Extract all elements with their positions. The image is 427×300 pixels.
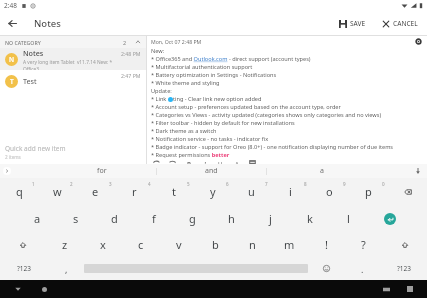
staticText: * White theme and styling — [151, 79, 220, 87]
button[interactable]: p — [349, 178, 388, 205]
staticText: 2:47 PM — [121, 72, 141, 79]
button[interactable]: c — [122, 232, 160, 257]
button[interactable]: Hide keyboard — [412, 165, 424, 177]
button[interactable]: Back — [0, 11, 24, 35]
button[interactable]: Undo — [152, 160, 161, 164]
button[interactable]: Shift — [0, 232, 46, 257]
button[interactable]: ? — [345, 232, 382, 257]
button[interactable]: CANCEL — [377, 15, 423, 32]
button[interactable]: j — [251, 205, 290, 232]
button[interactable]: NO CATEGORY — [0, 36, 146, 48]
button[interactable]: Recents — [403, 282, 417, 296]
staticText: b — [212, 237, 219, 252]
staticText: f — [152, 211, 156, 226]
staticText: s — [73, 211, 79, 226]
button[interactable]: k — [290, 205, 329, 232]
button[interactable]: ?123 — [380, 257, 427, 280]
button[interactable]: for — [47, 166, 156, 176]
staticText: 8 — [304, 181, 307, 187]
button[interactable]: U — [216, 160, 225, 164]
button[interactable]: Insert — [248, 160, 257, 164]
button[interactable]: Shift — [382, 232, 427, 257]
button[interactable]: , — [48, 257, 84, 280]
staticText: * Dark theme as a switch — [151, 127, 217, 135]
button[interactable]: N — [0, 48, 146, 70]
button[interactable]: Keyboard — [379, 282, 393, 296]
staticText: u — [248, 184, 255, 199]
button[interactable]: d — [95, 205, 134, 232]
staticText: * Categories vs Views - activity updated… — [151, 111, 382, 119]
button[interactable]: r — [115, 178, 154, 205]
button[interactable]: t — [154, 178, 193, 205]
button[interactable]: a — [18, 205, 56, 232]
button[interactable]: x — [84, 232, 122, 257]
button[interactable]: T — [0, 70, 146, 92]
staticText: y — [210, 184, 216, 199]
button[interactable]: n — [234, 232, 271, 257]
staticText: z — [62, 237, 68, 252]
button[interactable]: a — [267, 166, 376, 176]
staticText: * Link — [151, 95, 168, 103]
button[interactable]: y — [193, 178, 232, 205]
button[interactable]: z — [46, 232, 84, 257]
button[interactable]: h — [212, 205, 251, 232]
staticText: A very long item Tablet v11.7.14 New: * … — [23, 59, 118, 70]
button[interactable]: I — [200, 160, 209, 164]
button[interactable]: v — [160, 232, 197, 257]
staticText: New: — [151, 47, 165, 55]
button[interactable]: f — [134, 205, 173, 232]
staticText: r — [132, 184, 137, 199]
button[interactable]: b — [197, 232, 234, 257]
staticText: A — [235, 160, 239, 164]
staticText: 3 — [109, 181, 112, 187]
button[interactable]: Settings — [414, 37, 423, 46]
button[interactable]: Quick add new item — [0, 144, 146, 164]
button[interactable]: ?123 — [0, 257, 48, 280]
staticText: q — [16, 184, 23, 199]
button[interactable]: Enter — [368, 205, 411, 232]
button[interactable]: B — [184, 160, 193, 164]
button[interactable]: Redo — [168, 160, 177, 164]
staticText: * Notification service - no tasks - indi… — [151, 135, 269, 143]
staticText: i — [289, 184, 292, 199]
staticText: 2 — [70, 181, 73, 187]
staticText: 4 — [148, 181, 151, 187]
button[interactable]: ! — [308, 232, 345, 257]
staticText: d — [111, 211, 118, 226]
staticText: * Request permissions better — [151, 151, 230, 159]
staticText: 5 — [187, 181, 190, 187]
button[interactable]: Expand — [3, 167, 11, 175]
button[interactable]: q — [0, 178, 38, 205]
staticText: Update: — [151, 87, 172, 95]
staticText: 2 — [123, 39, 127, 46]
button[interactable]: Back — [12, 283, 24, 295]
button[interactable]: o — [310, 178, 349, 205]
button[interactable]: Space — [84, 257, 308, 280]
button[interactable]: . — [344, 257, 380, 280]
staticText: w — [53, 184, 62, 199]
button[interactable]: SAVE — [334, 15, 371, 32]
button[interactable]: m — [271, 232, 308, 257]
button[interactable]: A — [232, 160, 241, 164]
staticText: ting - Clear link new option added — [173, 95, 262, 103]
button[interactable]: e — [76, 178, 115, 205]
button[interactable]: l — [329, 205, 368, 232]
staticText: 2 items — [5, 154, 21, 160]
staticText: a — [320, 166, 324, 176]
staticText: SAVE — [350, 19, 366, 28]
button[interactable]: u — [232, 178, 271, 205]
button[interactable]: i — [271, 178, 310, 205]
staticText: T — [10, 77, 14, 86]
staticText: x — [100, 237, 106, 252]
staticText: j — [269, 211, 272, 226]
staticText: t — [172, 184, 176, 199]
button[interactable]: Emoji — [308, 257, 344, 280]
button[interactable]: and — [157, 166, 266, 176]
button[interactable]: g — [173, 205, 212, 232]
button[interactable]: w — [38, 178, 76, 205]
staticText: NO CATEGORY — [5, 39, 41, 46]
staticText: 2:48 — [4, 1, 17, 10]
button[interactable]: s — [56, 205, 95, 232]
button[interactable]: Backspace — [388, 178, 427, 205]
button[interactable]: Home — [38, 283, 50, 295]
